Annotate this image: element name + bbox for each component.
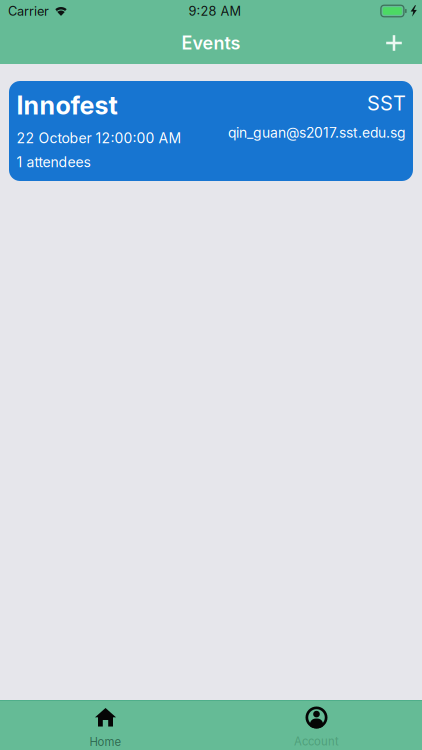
staticText: Account [294, 734, 339, 748]
staticText: qin_guan@s2017.sst.edu.sg [228, 124, 406, 141]
button[interactable]: Innofest [9, 81, 413, 181]
staticText: SST [367, 91, 406, 115]
staticText: 1 attendees [16, 154, 90, 170]
button[interactable]: Account [211, 700, 422, 750]
staticText: 9:28 AM [188, 3, 241, 19]
staticText: Events [181, 32, 240, 54]
staticText: 22 October 12:00:00 AM [16, 130, 181, 147]
staticText: Innofest [16, 90, 117, 121]
button[interactable]: Add event [366, 22, 422, 64]
staticText: Home [89, 735, 121, 749]
staticText: Carrier [8, 3, 49, 19]
button[interactable]: Home [0, 700, 211, 750]
